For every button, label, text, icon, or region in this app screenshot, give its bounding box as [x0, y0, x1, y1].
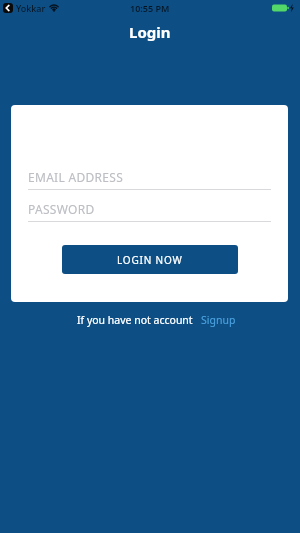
button[interactable]: LOGIN NOW	[62, 245, 238, 274]
button[interactable]: PASSWORD	[28, 201, 271, 217]
button[interactable]: EMAIL ADDRESS	[28, 169, 271, 185]
staticText: 10:55 PM	[130, 2, 170, 14]
staticText: Yokkar	[16, 2, 46, 14]
staticText: Signup	[201, 313, 236, 327]
staticText: EMAIL ADDRESS	[28, 169, 124, 185]
staticText: If you have not account	[77, 313, 193, 327]
button[interactable]: Signup	[201, 313, 236, 327]
staticText: PASSWORD	[28, 201, 95, 217]
staticText: Login	[129, 22, 171, 42]
staticText: LOGIN NOW	[117, 253, 183, 267]
